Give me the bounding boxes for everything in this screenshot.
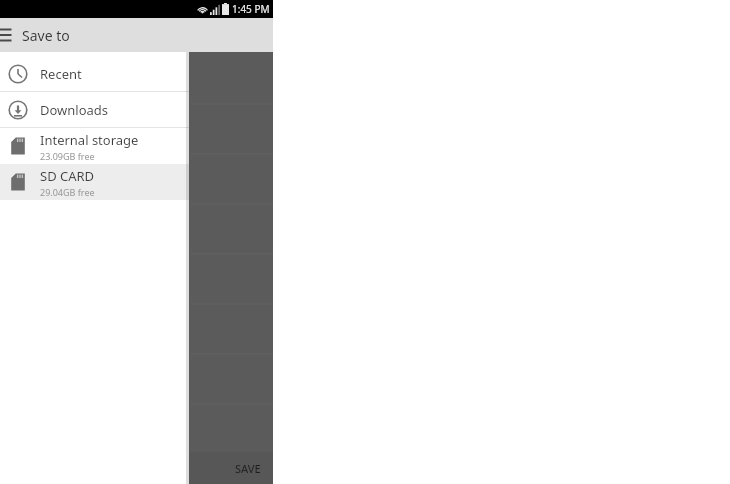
staticText: SD CARD	[40, 167, 95, 185]
staticText: Downloads	[40, 101, 109, 119]
button[interactable]: Downloads	[0, 92, 189, 127]
staticText: 23.09GB free	[40, 150, 95, 162]
button[interactable]: Internal storage	[0, 128, 189, 164]
staticText: Save to	[22, 26, 70, 45]
staticText: 29.04GB free	[40, 186, 95, 198]
staticText: Recent	[40, 65, 82, 83]
button[interactable]: Recent	[0, 56, 189, 91]
button[interactable]: SAVE	[223, 455, 273, 482]
staticText: SAVE	[235, 461, 261, 476]
button[interactable]: Open navigation drawer	[0, 22, 17, 48]
staticText: 1:45 PM	[232, 2, 270, 16]
button[interactable]: SD CARD	[0, 164, 189, 200]
staticText: Internal storage	[40, 131, 139, 149]
